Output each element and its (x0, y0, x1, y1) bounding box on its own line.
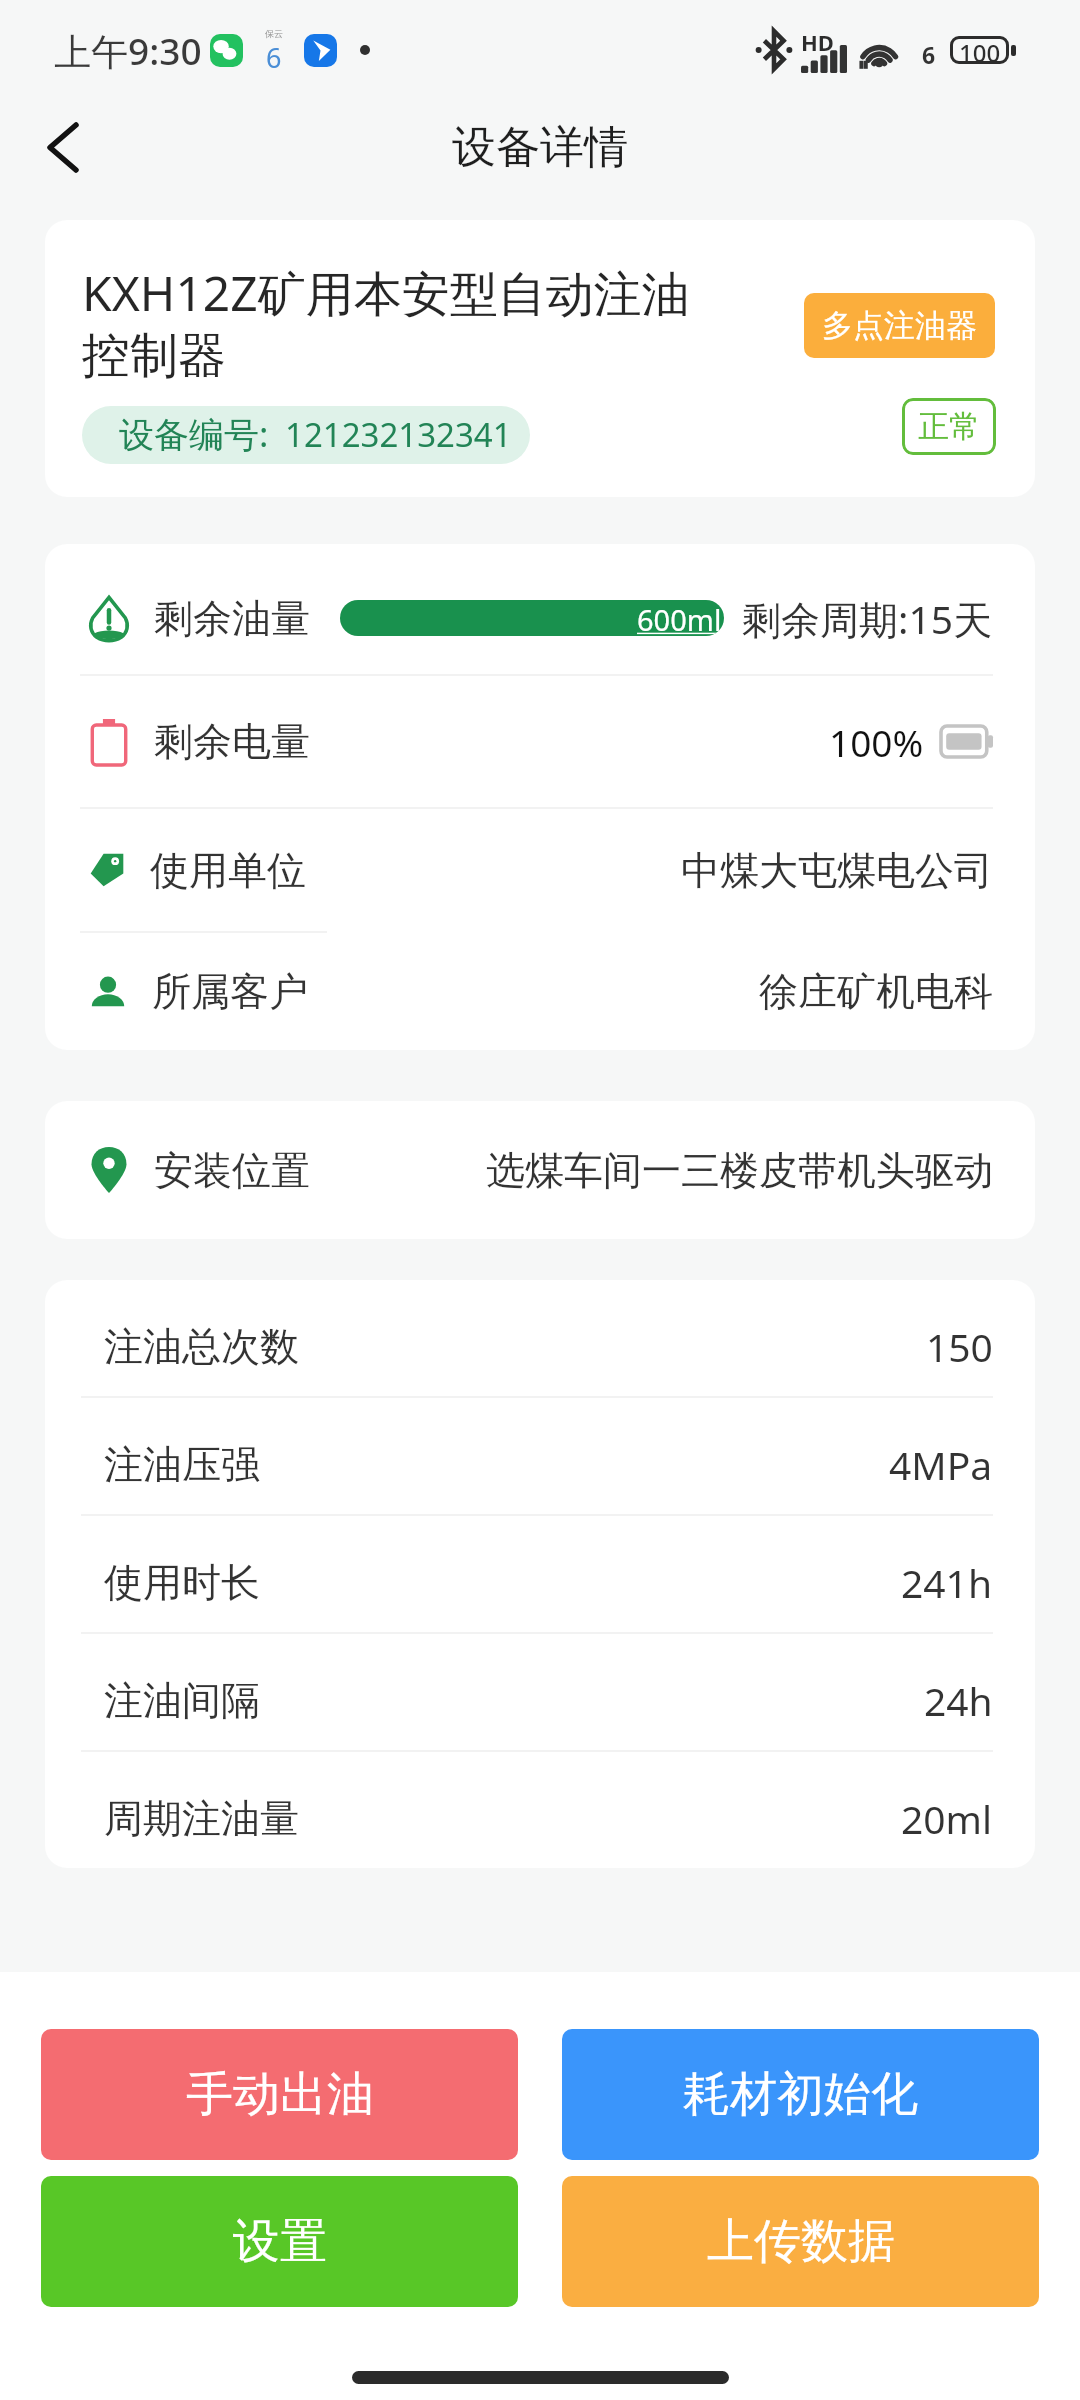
staticText: 剩余周期:15天 (742, 592, 993, 645)
staticText: 100% (829, 717, 924, 767)
staticText: 正常 (918, 407, 980, 446)
staticText: 徐庄矿机电科 (759, 967, 993, 1016)
button[interactable]: 注油间隔 (45, 1634, 1035, 1750)
staticText: KXH12Z矿用本安型自动注油控制器 (82, 260, 727, 386)
button[interactable]: 剩余油量 (45, 544, 1035, 674)
button[interactable]: 设置 (41, 2176, 518, 2307)
staticText: 设备详情 (452, 120, 628, 175)
staticText: 150 (926, 1320, 993, 1373)
staticText: 周期注油量 (104, 1794, 299, 1843)
staticText: 多点注油器 (822, 306, 977, 345)
staticText: 241h (901, 1556, 993, 1609)
staticText: 上午9:30 (54, 25, 202, 76)
staticText: HD (801, 27, 834, 57)
button[interactable]: 上传数据 (562, 2176, 1039, 2307)
staticText: 4MPa (889, 1438, 993, 1491)
button[interactable]: 多点注油器 (804, 293, 995, 358)
staticText: 600ml (637, 600, 722, 636)
button[interactable]: 周期注油量 (45, 1752, 1035, 1868)
staticText: 100 (959, 36, 1001, 64)
staticText: 121232132341 (285, 412, 512, 457)
staticText: 注油间隔 (104, 1676, 260, 1725)
staticText: 耗材初始化 (683, 2065, 918, 2124)
staticText: 使用单位 (150, 846, 306, 895)
button[interactable]: 正常 (902, 398, 996, 455)
staticText: 中煤大屯煤电公司 (681, 846, 993, 895)
staticText: 设置 (233, 2212, 327, 2271)
staticText: 保云 (265, 28, 283, 39)
button[interactable]: 使用单位 (45, 809, 1035, 931)
staticText: 安装位置 (154, 1146, 310, 1195)
staticText: 剩余电量 (154, 717, 310, 766)
staticText: 24h (924, 1674, 993, 1727)
staticText: 使用时长 (104, 1558, 260, 1607)
staticText: 上传数据 (707, 2212, 895, 2271)
staticText: 6 (266, 39, 282, 72)
button[interactable]: 所属客户 (45, 933, 1035, 1050)
button[interactable]: 注油压强 (45, 1398, 1035, 1514)
button[interactable]: Back (8, 100, 118, 195)
button[interactable]: 手动出油 (41, 2029, 518, 2160)
staticText: 剩余油量 (154, 594, 310, 643)
staticText: 注油总次数 (104, 1322, 299, 1371)
button[interactable]: 剩余电量 (45, 676, 1035, 807)
staticText: 手动出油 (186, 2065, 374, 2124)
button[interactable]: 注油总次数 (45, 1280, 1035, 1396)
staticText: 20ml (901, 1792, 993, 1845)
staticText: 6 (922, 39, 936, 70)
staticText: 注油压强 (104, 1440, 260, 1489)
button[interactable]: 使用时长 (45, 1516, 1035, 1632)
button[interactable]: 耗材初始化 (562, 2029, 1039, 2160)
staticText: 选煤车间一三楼皮带机头驱动 (486, 1146, 993, 1195)
staticText: 设备编号: (119, 410, 269, 458)
staticText: 所属客户 (152, 967, 308, 1016)
button[interactable]: 安装位置 (45, 1101, 1035, 1239)
